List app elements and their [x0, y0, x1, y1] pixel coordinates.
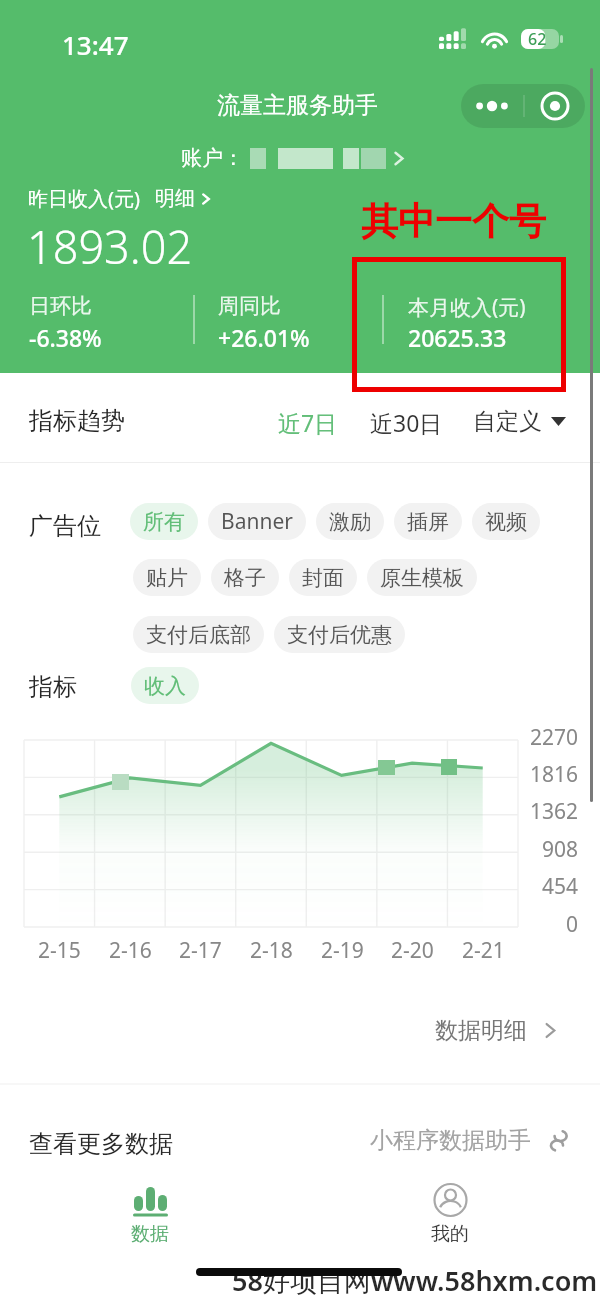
staticText: 贴片	[146, 565, 188, 591]
staticText: 周同比	[218, 293, 281, 319]
staticText: 流量主服务助手	[217, 91, 378, 120]
button[interactable]: 账户：	[181, 145, 404, 171]
staticText: 62	[528, 28, 547, 50]
staticText: 我的	[431, 1222, 469, 1244]
button[interactable]: 原生模板	[367, 559, 477, 596]
staticText: 广告位	[29, 511, 101, 541]
staticText: 小程序数据助手	[370, 1126, 531, 1155]
button[interactable]: 格子	[211, 559, 279, 596]
staticText: 13:47	[62, 27, 129, 62]
button[interactable]: 支付后优惠	[274, 616, 405, 653]
staticText: 2-20	[391, 936, 434, 965]
other: Mini program	[549, 1129, 569, 1153]
staticText: 2270	[529, 723, 578, 752]
staticText: 格子	[224, 565, 266, 591]
staticText: 0	[565, 910, 578, 939]
button[interactable]: 明细	[155, 186, 210, 211]
button[interactable]: 激励	[316, 503, 384, 540]
staticText: 本月收入(元)	[408, 293, 526, 322]
staticText: 查看更多数据	[29, 1129, 173, 1159]
staticText: 2-16	[109, 936, 152, 965]
staticText: 1893.02	[27, 216, 193, 277]
button[interactable]: 插屏	[394, 503, 462, 540]
button[interactable]: 我的	[300, 1178, 600, 1244]
button[interactable]: Banner	[208, 503, 306, 540]
staticText: 20625.33	[408, 322, 507, 353]
staticText: 收入	[144, 673, 186, 699]
staticText: 激励	[329, 509, 371, 535]
staticText: 原生模板	[380, 565, 464, 591]
button[interactable]: 支付后底部	[133, 616, 264, 653]
staticText: 自定义	[473, 407, 542, 436]
staticText: 指标	[29, 672, 77, 702]
staticText: 昨日收入(元)	[28, 185, 140, 212]
staticText: 2-15	[38, 936, 81, 965]
staticText: 2-19	[321, 936, 364, 965]
staticText: 明细	[155, 186, 195, 211]
staticText: 1362	[529, 797, 578, 826]
button[interactable]: 贴片	[133, 559, 201, 596]
staticText: -6.38%	[29, 322, 102, 353]
staticText: 指标趋势	[29, 406, 125, 436]
button[interactable]: 收入	[131, 667, 199, 704]
staticText: 908	[541, 835, 578, 864]
staticText: 所有	[143, 509, 185, 535]
staticText: 近30日	[370, 407, 443, 438]
button[interactable]: 数据	[0, 1178, 300, 1244]
staticText: 数据明细	[435, 1016, 527, 1045]
staticText: 2-18	[250, 936, 293, 965]
button[interactable]: 小程序数据助手	[370, 1126, 569, 1155]
button[interactable]: 自定义	[473, 407, 566, 436]
staticText: 2-17	[179, 936, 222, 965]
button[interactable]: More options and close	[461, 84, 585, 128]
staticText: 视频	[485, 509, 527, 535]
button[interactable]: 视频	[472, 503, 540, 540]
staticText: 1816	[529, 760, 578, 789]
button[interactable]: 近7日	[278, 407, 338, 438]
staticText: 账户：	[181, 145, 244, 171]
staticText: 日环比	[29, 293, 92, 319]
staticText: 封面	[302, 565, 344, 591]
button[interactable]: 所有	[130, 503, 198, 540]
staticText: 数据	[131, 1222, 169, 1244]
staticText: +26.01%	[218, 322, 310, 353]
button[interactable]: 数据明细	[435, 1016, 556, 1045]
staticText: 2-21	[462, 936, 505, 965]
staticText: Banner	[221, 507, 293, 536]
staticText: 插屏	[407, 509, 449, 535]
button[interactable]: 封面	[289, 559, 357, 596]
button[interactable]: 近30日	[370, 407, 443, 438]
staticText: 454	[541, 872, 578, 901]
staticText: 其中一个号	[361, 198, 546, 245]
staticText: 支付后优惠	[287, 622, 392, 648]
staticText: 58好项目网www.58hxm.com	[232, 1262, 598, 1298]
staticText: 近7日	[278, 407, 338, 438]
staticText: 支付后底部	[146, 622, 251, 648]
